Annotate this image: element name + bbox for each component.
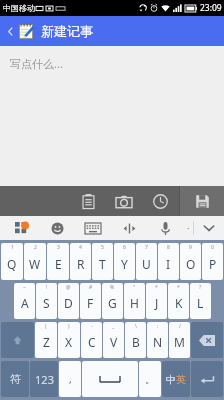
staticText: T	[99, 256, 106, 272]
staticText: ,	[69, 372, 72, 386]
staticText: L	[197, 295, 204, 311]
staticText: V	[110, 334, 118, 350]
button[interactable]: 写点什么...	[0, 46, 224, 186]
staticText: #	[89, 284, 93, 291]
staticText: ?	[199, 284, 202, 291]
staticText: 8	[167, 244, 170, 251]
button[interactable]: :	[147, 322, 168, 358]
button[interactable]: Cursor	[111, 216, 147, 240]
button[interactable]: 符	[1, 361, 29, 397]
button[interactable]: !	[36, 283, 57, 319]
staticText: Y	[121, 256, 128, 272]
staticText: 中	[166, 373, 176, 386]
button[interactable]: 中	[162, 361, 190, 397]
staticText: I	[166, 256, 171, 272]
staticText: !	[46, 284, 48, 291]
staticText: (	[45, 323, 47, 330]
button[interactable]	[82, 361, 138, 397]
button[interactable]: Reminder	[145, 186, 175, 216]
button[interactable]: #	[80, 283, 101, 319]
button[interactable]: Shift	[1, 322, 34, 358]
button[interactable]: 123	[30, 361, 58, 397]
staticText: F	[87, 295, 94, 311]
button[interactable]: Backspace	[191, 322, 223, 358]
button[interactable]: *	[168, 283, 189, 319]
button[interactable]: Voice	[147, 216, 183, 240]
button[interactable]: )	[58, 322, 80, 358]
staticText: O	[186, 256, 196, 272]
staticText: *	[155, 284, 158, 291]
staticText: @	[66, 284, 71, 291]
button[interactable]: *	[146, 283, 167, 319]
staticText: N	[153, 334, 163, 350]
button[interactable]: 9	[180, 243, 201, 280]
staticText: ·	[187, 222, 190, 234]
staticText: 新建记事	[41, 23, 93, 39]
button[interactable]: 6	[114, 243, 135, 280]
button[interactable]: 8	[158, 243, 179, 280]
staticText: 0	[211, 244, 214, 251]
button[interactable]: Apps	[4, 216, 39, 240]
button[interactable]: 0	[202, 243, 223, 280]
staticText: )	[68, 323, 70, 330]
button[interactable]: \	[125, 322, 146, 358]
staticText: _	[112, 323, 115, 330]
staticText: 5	[101, 244, 104, 251]
staticText: 1	[11, 244, 14, 251]
button[interactable]: Emoji	[39, 216, 75, 240]
staticText: 7	[145, 244, 148, 251]
staticText: 2	[34, 244, 37, 251]
button[interactable]: 4	[70, 243, 91, 280]
button[interactable]: "	[124, 283, 145, 319]
button[interactable]: ?	[190, 283, 211, 319]
staticText: Z	[43, 334, 50, 350]
button[interactable]: ,	[59, 361, 81, 397]
button[interactable]: Notes	[73, 186, 103, 216]
staticText: 写点什么...	[10, 56, 63, 71]
staticText: 3	[57, 244, 60, 251]
staticText: "	[133, 284, 136, 291]
staticText: J	[155, 295, 159, 311]
staticText: 4	[79, 244, 82, 251]
button[interactable]: /	[169, 322, 190, 358]
button[interactable]: Back	[4, 25, 16, 37]
button[interactable]: Save	[180, 186, 224, 216]
staticText: 9	[189, 244, 192, 251]
staticText: :	[157, 323, 159, 330]
button[interactable]: 3	[47, 243, 69, 280]
button[interactable]: 5	[92, 243, 113, 280]
button[interactable]: -	[81, 322, 102, 358]
staticText: U	[142, 256, 151, 272]
button[interactable]: 。	[139, 361, 161, 397]
staticText: S	[43, 295, 50, 311]
button[interactable]: 1	[1, 243, 23, 280]
button[interactable]: Camera	[109, 186, 139, 216]
button[interactable]: Enter	[191, 361, 223, 397]
staticText: D	[64, 295, 73, 311]
button[interactable]: Hide keyboard	[194, 216, 224, 240]
button[interactable]: _	[103, 322, 124, 358]
button[interactable]: %	[102, 283, 123, 319]
staticText: A	[21, 295, 29, 311]
staticText: *	[177, 284, 180, 291]
button[interactable]: ~	[14, 283, 35, 319]
staticText: 。	[145, 373, 155, 386]
button[interactable]: (	[35, 322, 57, 358]
staticText: K	[175, 295, 183, 311]
staticText: R	[77, 256, 85, 272]
button[interactable]: @	[58, 283, 79, 319]
staticText: B	[132, 334, 140, 350]
button[interactable]: 2	[24, 243, 46, 280]
button[interactable]: 7	[136, 243, 157, 280]
button[interactable]: Keyboard	[75, 216, 111, 240]
staticText: G	[108, 295, 117, 311]
staticText: ~	[23, 284, 26, 291]
staticText: C	[88, 334, 96, 350]
staticText: 英	[176, 373, 186, 386]
staticText: 23:09	[200, 2, 222, 14]
staticText: 中国移动	[3, 3, 35, 13]
staticText: W	[29, 256, 41, 272]
staticText: %	[110, 284, 115, 291]
staticText: E	[55, 256, 62, 272]
staticText: 6	[123, 244, 126, 251]
